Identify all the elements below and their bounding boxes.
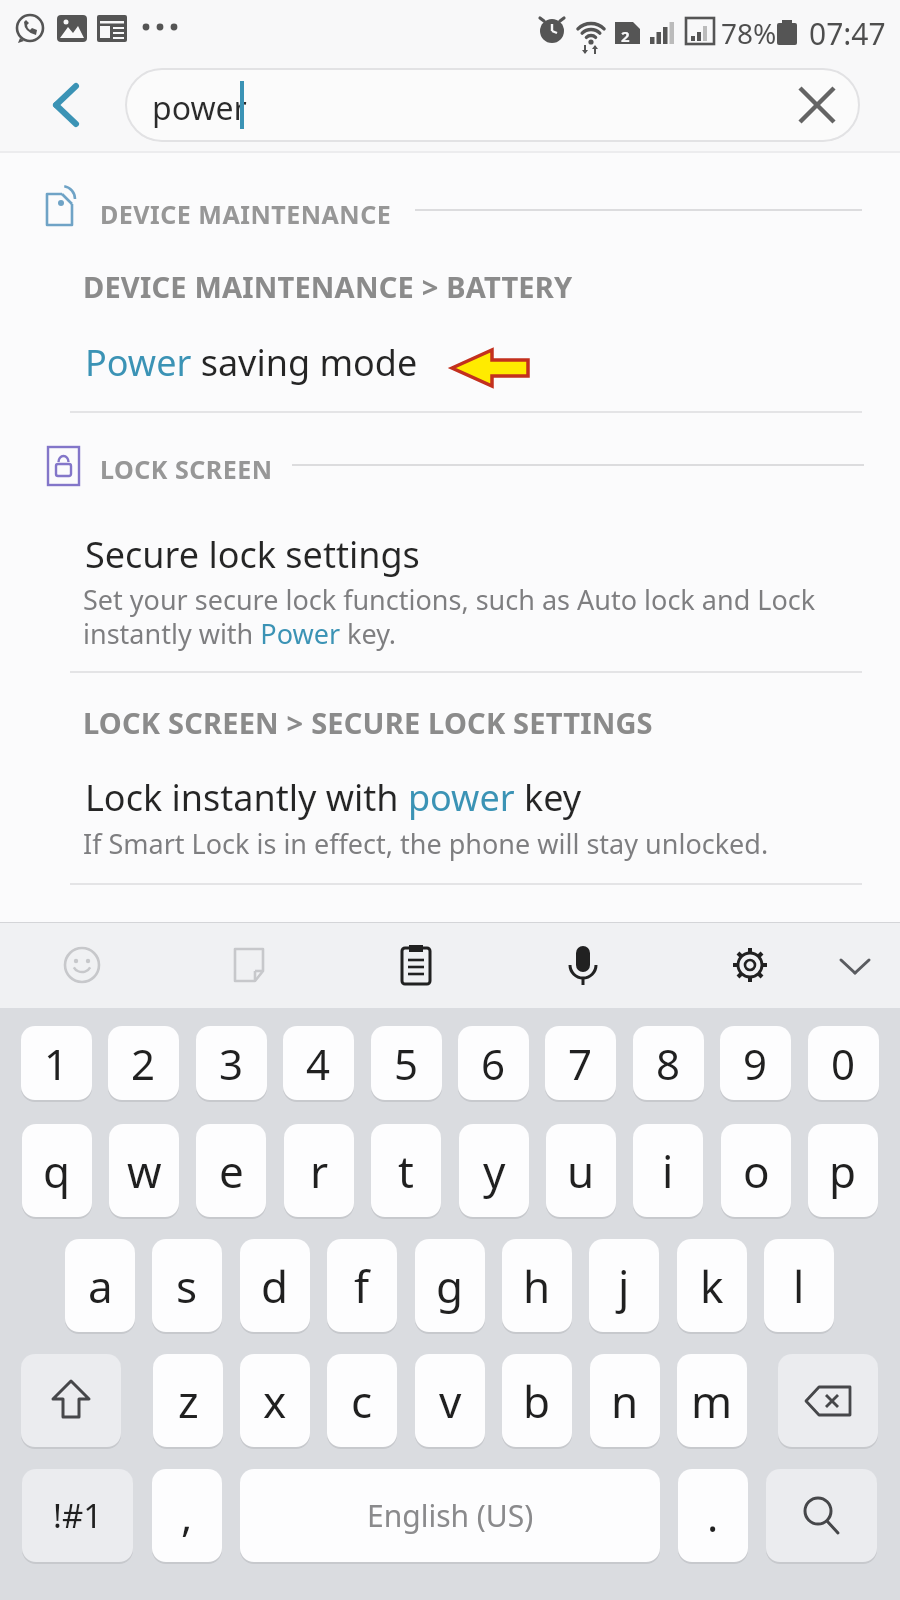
button[interactable]: 3 [196,1026,267,1100]
button[interactable]: l [764,1239,834,1332]
button[interactable]: 9 [720,1026,791,1100]
staticText: DEVICE MAINTENANCE > BATTERY [83,267,573,306]
button[interactable]: 4 [283,1026,354,1100]
button[interactable]: 7 [545,1026,616,1100]
button[interactable] [21,1354,121,1447]
button[interactable]: w [109,1124,179,1217]
button[interactable]: d [240,1239,310,1332]
staticText: o [743,1141,770,1201]
button[interactable] [80,525,780,645]
staticText: c [351,1371,373,1431]
button[interactable] [766,1469,877,1562]
button[interactable]: k [677,1239,747,1332]
staticText: LOCK SCREEN > SECURE LOCK SETTINGS [83,703,653,742]
button[interactable]: g [415,1239,485,1332]
button[interactable]: t [371,1124,441,1217]
button[interactable] [209,926,289,1004]
button[interactable]: j [589,1239,659,1332]
button[interactable] [710,926,790,1004]
staticText: 07:47 [809,13,886,54]
button[interactable] [42,926,122,1004]
button[interactable]: v [415,1354,485,1447]
button[interactable] [787,75,847,135]
button[interactable] [80,330,640,390]
staticText: instantly with Power key. [83,615,397,652]
button[interactable]: o [721,1124,791,1217]
button[interactable]: n [590,1354,660,1447]
button[interactable]: e [196,1124,266,1217]
button[interactable]: i [633,1124,703,1217]
staticText: j [618,1256,630,1316]
staticText: . [707,1487,719,1544]
button[interactable]: . [678,1469,748,1562]
staticText: i [662,1141,674,1201]
staticText: If Smart Lock is in effect, the phone wi… [83,825,769,862]
button[interactable]: 2 [108,1026,179,1100]
staticText: h [523,1256,551,1316]
button[interactable]: 1 [21,1026,92,1100]
staticText: 0 [831,1035,856,1092]
staticText: power [152,86,247,130]
button[interactable]: a [65,1239,135,1332]
staticText: 7 [568,1035,593,1092]
button[interactable]: q [22,1124,92,1217]
staticText: Lock instantly with power key [85,773,582,822]
staticText: x [263,1371,287,1431]
button[interactable] [778,1354,878,1447]
button[interactable]: m [677,1354,747,1447]
staticText: 8 [656,1035,681,1092]
button[interactable] [376,926,456,1004]
button[interactable]: c [327,1354,397,1447]
button[interactable] [825,935,885,995]
button[interactable]: English (US) [240,1469,660,1562]
staticText: Set your secure lock functions, such as … [83,581,816,618]
staticText: b [523,1371,551,1431]
staticText: English (US) [367,1495,534,1536]
button[interactable]: f [327,1239,397,1332]
staticText: u [567,1141,595,1201]
staticText: 1 [44,1035,69,1092]
button[interactable] [543,926,623,1004]
staticText: q [43,1141,71,1201]
button[interactable]: x [240,1354,310,1447]
button[interactable]: , [152,1469,222,1562]
staticText: a [88,1256,113,1316]
staticText: , [181,1487,193,1544]
staticText: w [127,1141,162,1201]
staticText: Secure lock settings [85,530,420,579]
button[interactable] [35,75,95,135]
staticText: z [178,1371,199,1431]
button[interactable]: s [152,1239,222,1332]
button[interactable]: 6 [458,1026,529,1100]
staticText: f [354,1256,370,1316]
button[interactable] [80,770,780,870]
staticText: DEVICE MAINTENANCE [100,197,392,231]
button[interactable]: p [808,1124,878,1217]
staticText: g [436,1256,464,1316]
button[interactable]: 5 [371,1026,442,1100]
staticText: v [439,1371,462,1431]
button[interactable]: !#1 [22,1469,133,1562]
staticText: Power saving mode [85,338,418,387]
staticText: 6 [481,1035,506,1092]
button[interactable]: z [153,1354,223,1447]
staticText: 78% [721,14,777,52]
button[interactable]: 0 [808,1026,879,1100]
staticText: m [691,1371,733,1431]
staticText: t [398,1141,414,1201]
staticText: s [176,1256,198,1316]
button[interactable]: h [502,1239,572,1332]
button[interactable]: y [459,1124,529,1217]
staticText: p [829,1141,857,1201]
button[interactable]: 8 [633,1026,704,1100]
staticText: y [483,1141,506,1201]
staticText: 3 [219,1035,244,1092]
button[interactable]: b [502,1354,572,1447]
staticText: r [310,1141,329,1201]
staticText: LOCK SCREEN [100,452,273,486]
button[interactable]: r [284,1124,354,1217]
staticText: 5 [394,1035,419,1092]
button[interactable]: u [546,1124,616,1217]
staticText: 4 [306,1035,331,1092]
staticText: k [700,1256,724,1316]
